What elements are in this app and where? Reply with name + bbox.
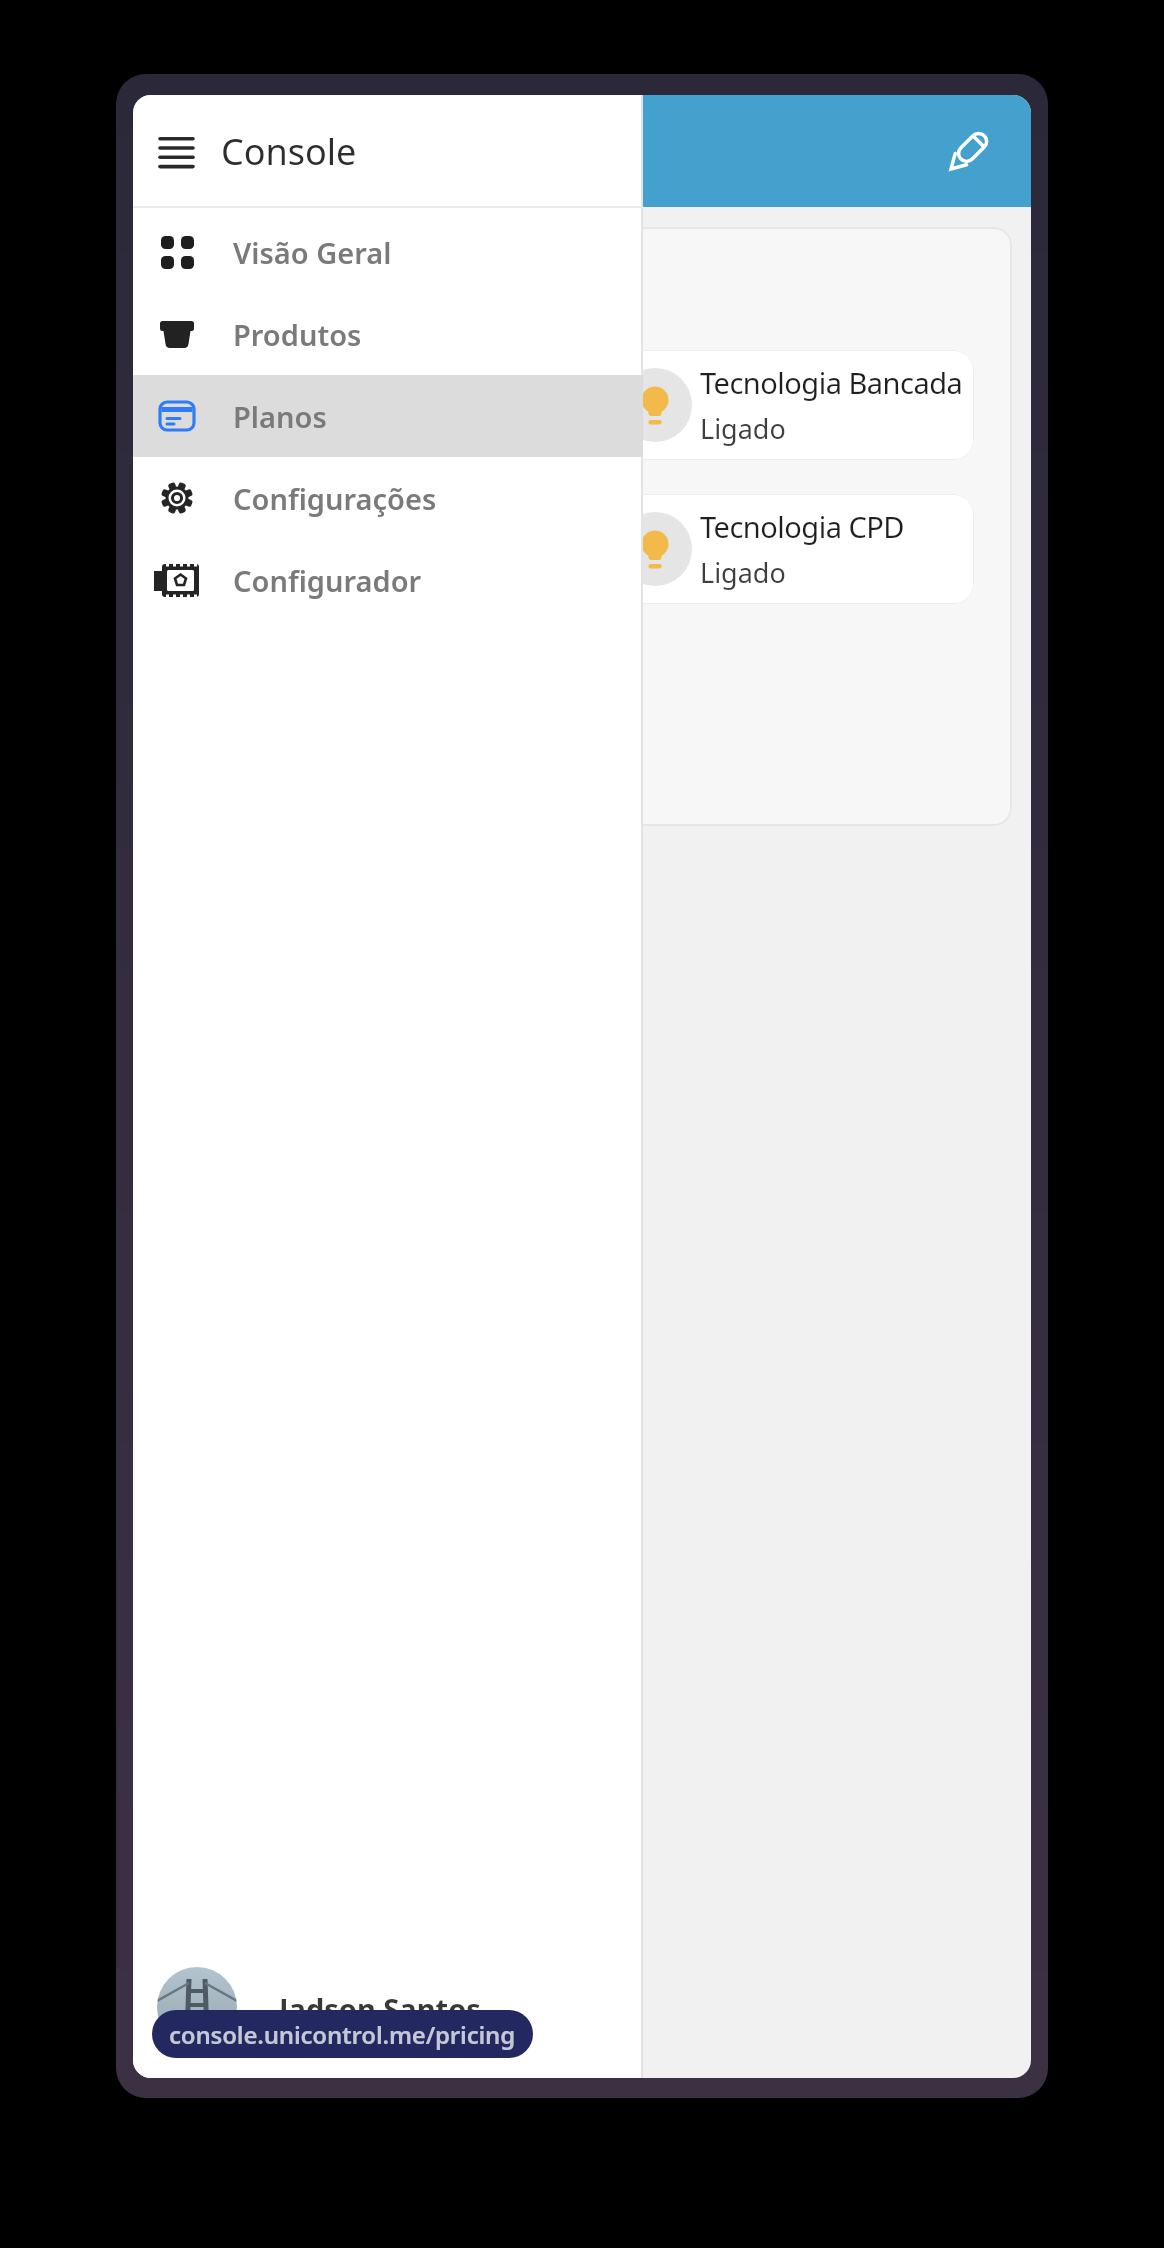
staticText: console.unicontrol.me/pricing <box>169 2018 516 2051</box>
button[interactable]: Configurações <box>133 457 643 539</box>
button[interactable] <box>152 128 200 176</box>
staticText: Ligado <box>700 410 786 447</box>
staticText: Ligado <box>700 554 786 591</box>
staticText: Console <box>221 127 357 176</box>
staticText: Visão Geral <box>233 233 392 272</box>
staticText: Configurador <box>233 561 422 600</box>
staticText: Tecnologia Bancada <box>700 363 963 402</box>
staticText: Configurações <box>233 479 437 518</box>
button[interactable] <box>944 128 992 176</box>
button[interactable]: Visão Geral <box>133 211 643 293</box>
staticText: Planos <box>233 397 327 436</box>
button[interactable]: Tecnologia CPD <box>590 494 974 604</box>
button[interactable]: Planos <box>133 375 643 457</box>
button[interactable]: Configurador <box>133 539 643 621</box>
button[interactable]: Tecnologia Bancada <box>590 350 974 460</box>
staticText: Jadson Santos <box>279 1989 481 2028</box>
button[interactable]: Produtos <box>133 293 643 375</box>
staticText: Tecnologia CPD <box>700 507 905 546</box>
staticText: Produtos <box>233 315 362 354</box>
